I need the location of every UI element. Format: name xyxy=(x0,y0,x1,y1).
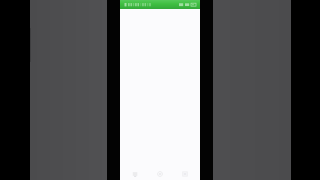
button[interactable]: Home xyxy=(150,167,170,180)
button[interactable]: Recent apps xyxy=(175,167,195,180)
button[interactable]: Back xyxy=(125,167,145,180)
